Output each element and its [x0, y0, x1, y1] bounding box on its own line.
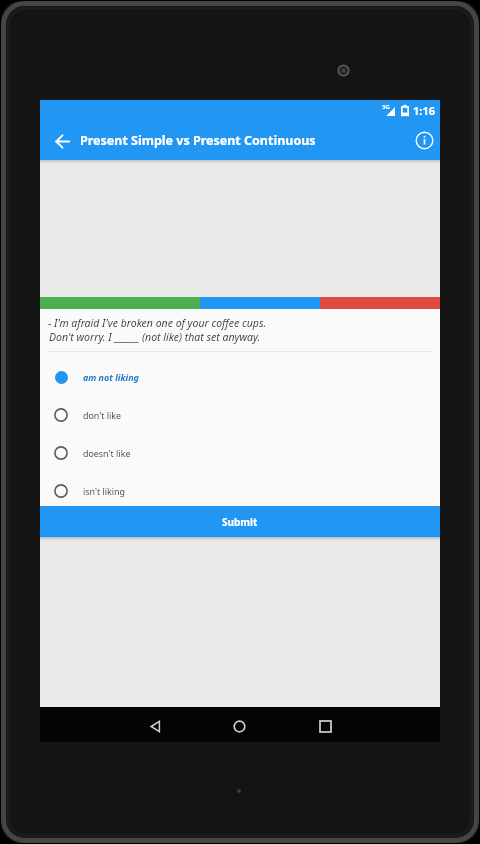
button[interactable]: don't like: [40, 396, 440, 434]
staticText: am not liking: [83, 371, 139, 383]
staticText: 1:16: [413, 103, 435, 118]
staticText: 3G: [382, 103, 390, 111]
staticText: Don't worry. I ______ (not like) that se…: [49, 330, 261, 344]
button[interactable]: am not liking: [40, 358, 440, 396]
staticText: Submit: [222, 515, 258, 529]
button[interactable]: Navigate up: [40, 120, 80, 160]
button[interactable]: doesn't like: [40, 434, 440, 472]
button[interactable]: Back: [113, 709, 197, 744]
staticText: doesn't like: [83, 447, 131, 459]
button[interactable]: Recent apps: [283, 709, 367, 744]
button[interactable]: isn't liking: [40, 472, 440, 510]
button[interactable]: Info: [400, 120, 440, 160]
button[interactable]: Submit: [40, 506, 440, 537]
staticText: isn't liking: [83, 485, 126, 497]
staticText: - I'm afraid I've broken one of your cof…: [48, 316, 267, 330]
staticText: don't like: [83, 409, 122, 421]
staticText: Present Simple vs Present Continuous: [80, 132, 316, 149]
button[interactable]: Home: [197, 709, 281, 744]
